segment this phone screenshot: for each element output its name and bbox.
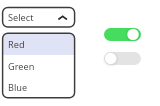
staticText: Blue [8, 81, 28, 94]
button[interactable]: Red [3, 33, 75, 55]
staticText: Red [8, 38, 25, 51]
button[interactable]: Blue [3, 77, 75, 98]
button[interactable]: Select [3, 7, 75, 27]
button[interactable]: Toggle off [104, 52, 141, 65]
button[interactable]: Green [3, 55, 75, 77]
button[interactable]: Toggle on [104, 28, 141, 41]
staticText: Green [8, 60, 35, 73]
staticText: Select [8, 11, 34, 24]
